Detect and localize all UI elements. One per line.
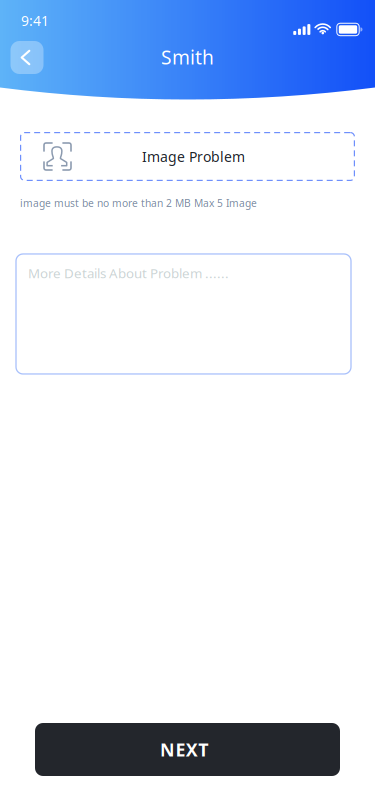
staticText: More Details About Problem ......: [28, 264, 229, 282]
staticText: Image Problem: [142, 147, 245, 166]
staticText: NEXT: [160, 737, 208, 762]
button[interactable]: Back: [10, 41, 43, 74]
staticText: Smith: [161, 44, 214, 70]
button[interactable]: More Details About Problem ......: [16, 254, 351, 374]
button[interactable]: Image Problem: [20, 132, 355, 181]
staticText: 9:41: [21, 11, 49, 30]
button[interactable]: NEXT: [35, 723, 340, 776]
staticText: image must be no more than 2 MB Max 5 Im…: [20, 196, 257, 210]
